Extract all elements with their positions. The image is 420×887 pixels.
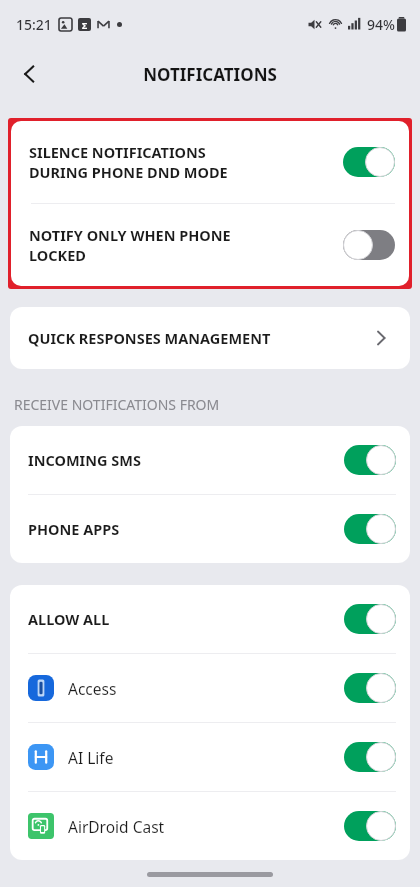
staticText: RECEIVE NOTIFICATIONS FROM (14, 395, 220, 414)
staticText: QUICK RESPONSES MANAGEMENT (28, 328, 271, 348)
staticText: NOTIFY ONLY WHEN PHONE LOCKED (29, 225, 279, 266)
button[interactable]: AirDroid Cast (10, 792, 410, 860)
button[interactable]: NOTIFY ONLY WHEN PHONE LOCKED (11, 204, 409, 286)
button[interactable]: Access (10, 654, 410, 722)
button[interactable]: Toggle on (344, 673, 396, 703)
button[interactable]: Toggle on (344, 445, 396, 475)
staticText: SILENCE NOTIFICATIONS DURING PHONE DND M… (29, 142, 279, 183)
staticText: NOTIFICATIONS (143, 63, 277, 86)
staticText: 94% (367, 15, 395, 34)
button[interactable]: QUICK RESPONSES MANAGEMENT (10, 307, 410, 369)
button[interactable]: AI Life (10, 723, 410, 791)
staticText: Access (68, 678, 268, 699)
staticText: 15:21 (16, 15, 52, 34)
button[interactable]: INCOMING SMS (10, 426, 410, 494)
staticText: AirDroid Cast (68, 816, 268, 837)
staticText: INCOMING SMS (28, 450, 248, 470)
staticText: PHONE APPS (28, 519, 248, 539)
button[interactable]: Back (8, 52, 52, 96)
button[interactable]: SILENCE NOTIFICATIONS DURING PHONE DND M… (11, 121, 409, 203)
button[interactable]: Toggle on (344, 811, 396, 841)
button[interactable]: Toggle on (344, 742, 396, 772)
button[interactable]: Toggle off (343, 230, 395, 260)
staticText: ALLOW ALL (28, 609, 248, 629)
button[interactable]: PHONE APPS (10, 495, 410, 563)
button[interactable]: ALLOW ALL (10, 585, 410, 653)
staticText: Σ (82, 19, 88, 31)
staticText: AI Life (68, 747, 268, 768)
button[interactable]: Toggle on (344, 514, 396, 544)
button[interactable]: Toggle on (343, 147, 395, 177)
button[interactable]: Toggle on (344, 604, 396, 634)
